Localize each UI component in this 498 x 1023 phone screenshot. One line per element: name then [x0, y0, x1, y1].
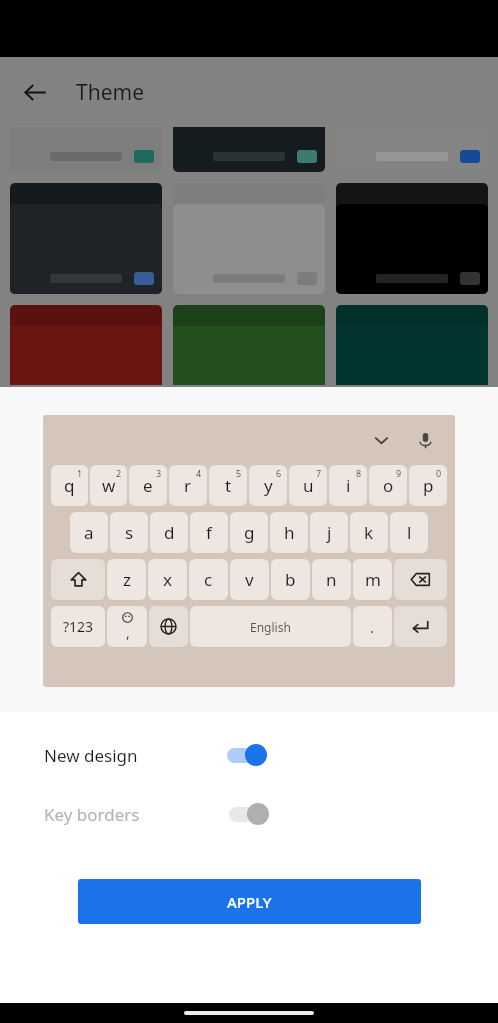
staticText: m [365, 568, 381, 591]
staticText: ?123 [63, 617, 94, 636]
button[interactable]: h [270, 512, 308, 553]
button[interactable] [173, 183, 325, 294]
staticText: 5 [236, 467, 242, 479]
button[interactable]: Enter [394, 606, 447, 647]
button[interactable]: Backspace [394, 559, 447, 600]
button[interactable]: Emoji and comma [107, 606, 147, 647]
staticText: English [250, 619, 291, 635]
staticText: . [370, 617, 375, 637]
staticText: i [346, 474, 351, 497]
staticText: 6 [276, 467, 282, 479]
staticText: f [206, 521, 212, 544]
button[interactable] [10, 183, 162, 294]
button[interactable]: l [390, 512, 428, 553]
button[interactable]: APPLY [78, 879, 421, 924]
staticText: t [225, 474, 232, 497]
button[interactable]: y [249, 465, 287, 506]
staticText: x [163, 568, 172, 591]
staticText: y [264, 474, 273, 497]
button[interactable]: j [310, 512, 348, 553]
button[interactable]: u [289, 465, 327, 506]
button[interactable] [336, 127, 488, 172]
button[interactable] [173, 305, 325, 385]
staticText: 9 [396, 467, 402, 479]
staticText: a [84, 521, 94, 544]
button[interactable]: Back [14, 71, 56, 113]
button[interactable]: Collapse keyboard [365, 424, 397, 456]
button[interactable]: g [230, 512, 268, 553]
staticText: 1 [77, 467, 83, 479]
staticText: New design [44, 744, 138, 767]
button[interactable]: o [369, 465, 407, 506]
staticText: q [64, 474, 75, 497]
staticText: s [125, 521, 134, 544]
button[interactable] [10, 127, 162, 172]
button[interactable]: Period [353, 606, 392, 647]
button[interactable]: x [148, 559, 187, 600]
button[interactable]: b [271, 559, 310, 600]
button[interactable]: p [409, 465, 447, 506]
button[interactable]: f [190, 512, 228, 553]
button[interactable]: s [110, 512, 148, 553]
button[interactable]: Key borders [0, 793, 498, 835]
button[interactable]: Voice input [409, 424, 441, 456]
staticText: , [126, 623, 130, 642]
staticText: g [244, 521, 255, 544]
button[interactable]: c [189, 559, 228, 600]
button[interactable]: i [329, 465, 367, 506]
button[interactable]: e [129, 465, 167, 506]
button[interactable]: ?123 [51, 606, 105, 647]
staticText: k [364, 521, 374, 544]
button[interactable]: English space key [190, 606, 351, 647]
staticText: Key borders [44, 803, 140, 826]
staticText: 4 [196, 467, 202, 479]
staticText: 0 [436, 467, 442, 479]
staticText: 2 [116, 467, 122, 479]
button[interactable]: a [70, 512, 108, 553]
button[interactable]: d [150, 512, 188, 553]
button[interactable] [336, 183, 488, 294]
button[interactable]: z [107, 559, 146, 600]
button[interactable]: New design [0, 734, 498, 776]
button[interactable]: Change language [149, 606, 188, 647]
staticText: u [303, 474, 314, 497]
button[interactable]: r [169, 465, 207, 506]
button[interactable]: v [230, 559, 269, 600]
button[interactable]: Shift [51, 559, 105, 600]
button[interactable] [336, 305, 488, 385]
staticText: h [284, 521, 295, 544]
staticText: Theme [76, 78, 144, 107]
staticText: b [285, 568, 296, 591]
staticText: 7 [316, 467, 322, 479]
staticText: o [383, 474, 394, 497]
staticText: 8 [356, 467, 362, 479]
staticText: z [123, 568, 131, 591]
button[interactable]: m [353, 559, 392, 600]
staticText: 3 [156, 467, 162, 479]
staticText: e [143, 474, 153, 497]
button[interactable]: n [312, 559, 351, 600]
staticText: c [204, 568, 213, 591]
staticText: d [164, 521, 175, 544]
button[interactable] [173, 127, 325, 172]
button[interactable]: t [209, 465, 247, 506]
button[interactable]: k [350, 512, 388, 553]
staticText: v [245, 568, 254, 591]
button[interactable]: w [90, 465, 127, 506]
staticText: l [407, 521, 412, 544]
staticText: w [102, 474, 116, 497]
staticText: APPLY [227, 892, 272, 912]
staticText: n [326, 568, 337, 591]
staticText: j [327, 521, 332, 544]
button[interactable]: q [51, 465, 88, 506]
staticText: p [423, 474, 434, 497]
button[interactable] [10, 305, 162, 385]
staticText: r [184, 474, 192, 497]
